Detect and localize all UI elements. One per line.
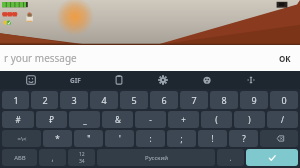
button[interactable]: 3 bbox=[60, 91, 88, 109]
staticText: GIF bbox=[70, 76, 81, 85]
button[interactable]: _ bbox=[69, 111, 100, 128]
staticText: ( bbox=[215, 114, 218, 125]
staticText: # bbox=[15, 114, 21, 125]
button[interactable]: : bbox=[136, 130, 165, 147]
button[interactable]: / bbox=[267, 111, 298, 128]
button[interactable]: ( bbox=[201, 111, 232, 128]
staticText: Русский bbox=[145, 154, 168, 162]
button[interactable]: r your message bbox=[0, 45, 300, 71]
button[interactable]: Key bbox=[260, 130, 298, 147]
staticText: 8 bbox=[221, 94, 227, 106]
button[interactable]: 9 bbox=[240, 91, 268, 109]
button[interactable]: . bbox=[217, 149, 244, 166]
staticText: & bbox=[115, 114, 121, 125]
button[interactable]: ' bbox=[105, 130, 134, 147]
button[interactable]: Theme bbox=[198, 71, 216, 89]
button[interactable]: OK bbox=[274, 51, 296, 66]
staticText: 2 bbox=[42, 94, 48, 106]
staticText: АБВ bbox=[14, 154, 26, 162]
button[interactable]: ) bbox=[234, 111, 265, 128]
button[interactable]: Русский bbox=[97, 149, 215, 166]
staticText: ; bbox=[180, 133, 183, 144]
staticText: 34 bbox=[79, 158, 85, 165]
button[interactable]: Clipboard bbox=[110, 71, 128, 89]
staticText: 0 bbox=[281, 94, 287, 106]
button[interactable]: 8 bbox=[210, 91, 238, 109]
staticText: ! bbox=[211, 133, 214, 144]
button[interactable]: =\< bbox=[2, 130, 41, 147]
staticText: - bbox=[149, 114, 152, 125]
staticText: , bbox=[51, 152, 54, 163]
staticText: =\< bbox=[17, 135, 27, 143]
staticText: / bbox=[281, 114, 284, 125]
staticText: + bbox=[181, 114, 186, 125]
staticText: OK bbox=[279, 53, 291, 64]
button[interactable]: - bbox=[135, 111, 166, 128]
button[interactable]: ₽ bbox=[36, 111, 67, 128]
button[interactable]: АБВ bbox=[2, 149, 37, 166]
button[interactable]: & bbox=[102, 111, 133, 128]
button[interactable]: GIF bbox=[66, 71, 84, 89]
staticText: 4 bbox=[101, 94, 107, 106]
staticText: 9 bbox=[251, 94, 257, 106]
button[interactable]: Key bbox=[68, 149, 95, 166]
staticText: ₽ bbox=[49, 114, 54, 125]
staticText: 7 bbox=[191, 94, 197, 106]
button[interactable]: 6 bbox=[150, 91, 178, 109]
button[interactable]: Stickers bbox=[22, 71, 40, 89]
button[interactable]: Key bbox=[246, 149, 298, 166]
button[interactable]: 0 bbox=[270, 91, 298, 109]
button[interactable]: ! bbox=[198, 130, 227, 147]
button[interactable]: Text cursor bbox=[242, 71, 260, 89]
button[interactable]: ; bbox=[167, 130, 196, 147]
staticText: ) bbox=[248, 114, 251, 125]
staticText: 5 bbox=[131, 94, 137, 106]
button[interactable]: * bbox=[43, 130, 72, 147]
staticText: 3 bbox=[71, 94, 77, 106]
staticText: 1 bbox=[13, 94, 19, 106]
button[interactable]: 4 bbox=[90, 91, 118, 109]
staticText: 6 bbox=[161, 94, 167, 106]
button[interactable]: 7 bbox=[180, 91, 208, 109]
staticText: . bbox=[229, 152, 232, 163]
button[interactable]: # bbox=[2, 111, 34, 128]
staticText: ' bbox=[119, 133, 121, 144]
staticText: " bbox=[87, 133, 91, 144]
button[interactable]: , bbox=[39, 149, 66, 166]
staticText: _ bbox=[83, 114, 87, 125]
button[interactable]: Settings bbox=[154, 71, 172, 89]
button[interactable]: + bbox=[168, 111, 199, 128]
staticText: : bbox=[149, 133, 152, 144]
button[interactable]: ? bbox=[229, 130, 258, 147]
staticText: 12 bbox=[79, 151, 85, 158]
button[interactable]: 5 bbox=[120, 91, 148, 109]
button[interactable]: 1 bbox=[2, 91, 29, 109]
button[interactable]: " bbox=[74, 130, 103, 147]
staticText: ? bbox=[242, 133, 246, 144]
staticText: * bbox=[55, 133, 60, 144]
staticText: r your message bbox=[4, 51, 274, 65]
button[interactable]: 2 bbox=[31, 91, 58, 109]
